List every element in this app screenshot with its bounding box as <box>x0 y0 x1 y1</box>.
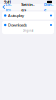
button[interactable]: Done <box>42 2 54 12</box>
staticText: Settings <box>21 2 34 12</box>
button[interactable]: Listen <box>1 2 13 12</box>
staticText: 9:41 <box>4 0 11 5</box>
staticText: Downloads <box>8 22 27 28</box>
staticText: Auto-play <box>8 13 24 18</box>
staticText: Listen <box>6 2 12 12</box>
staticText: Done <box>44 2 53 12</box>
staticText: Original <box>22 29 33 32</box>
